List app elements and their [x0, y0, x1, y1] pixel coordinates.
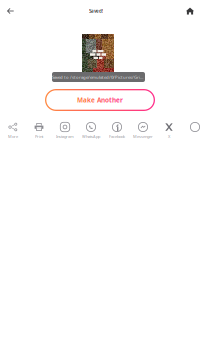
staticText: Ma — [77, 96, 87, 104]
staticText: WhatsApp — [82, 134, 100, 139]
button[interactable]: Print — [26, 122, 52, 142]
button[interactable]: WhatsApp — [78, 122, 104, 142]
staticText: A — [95, 96, 101, 104]
staticText: ke — [87, 96, 95, 104]
button[interactable]: More — [0, 122, 26, 142]
staticText: Saved to /storage/emulated/0/Pictures/Gr… — [52, 74, 145, 80]
staticText: Facebook — [109, 134, 125, 139]
staticText: er — [116, 96, 123, 104]
button[interactable]: Back — [0, 0, 21, 22]
staticText: More — [8, 134, 18, 139]
staticText: no — [101, 96, 109, 104]
button[interactable]: Home — [180, 0, 200, 22]
staticText: X — [168, 134, 170, 139]
button[interactable]: Messenger — [130, 122, 156, 142]
staticText: Messenger — [133, 134, 153, 139]
button[interactable]: Instagram — [52, 122, 78, 142]
button[interactable]: Ma — [45, 89, 155, 111]
staticText: Saved! — [89, 8, 103, 14]
staticText: Instagram — [56, 134, 74, 139]
staticText: th — [109, 96, 116, 104]
button[interactable]: X — [156, 122, 182, 142]
button[interactable]: Facebook — [104, 122, 130, 142]
staticText: Print — [35, 134, 43, 139]
button[interactable] — [182, 122, 200, 142]
